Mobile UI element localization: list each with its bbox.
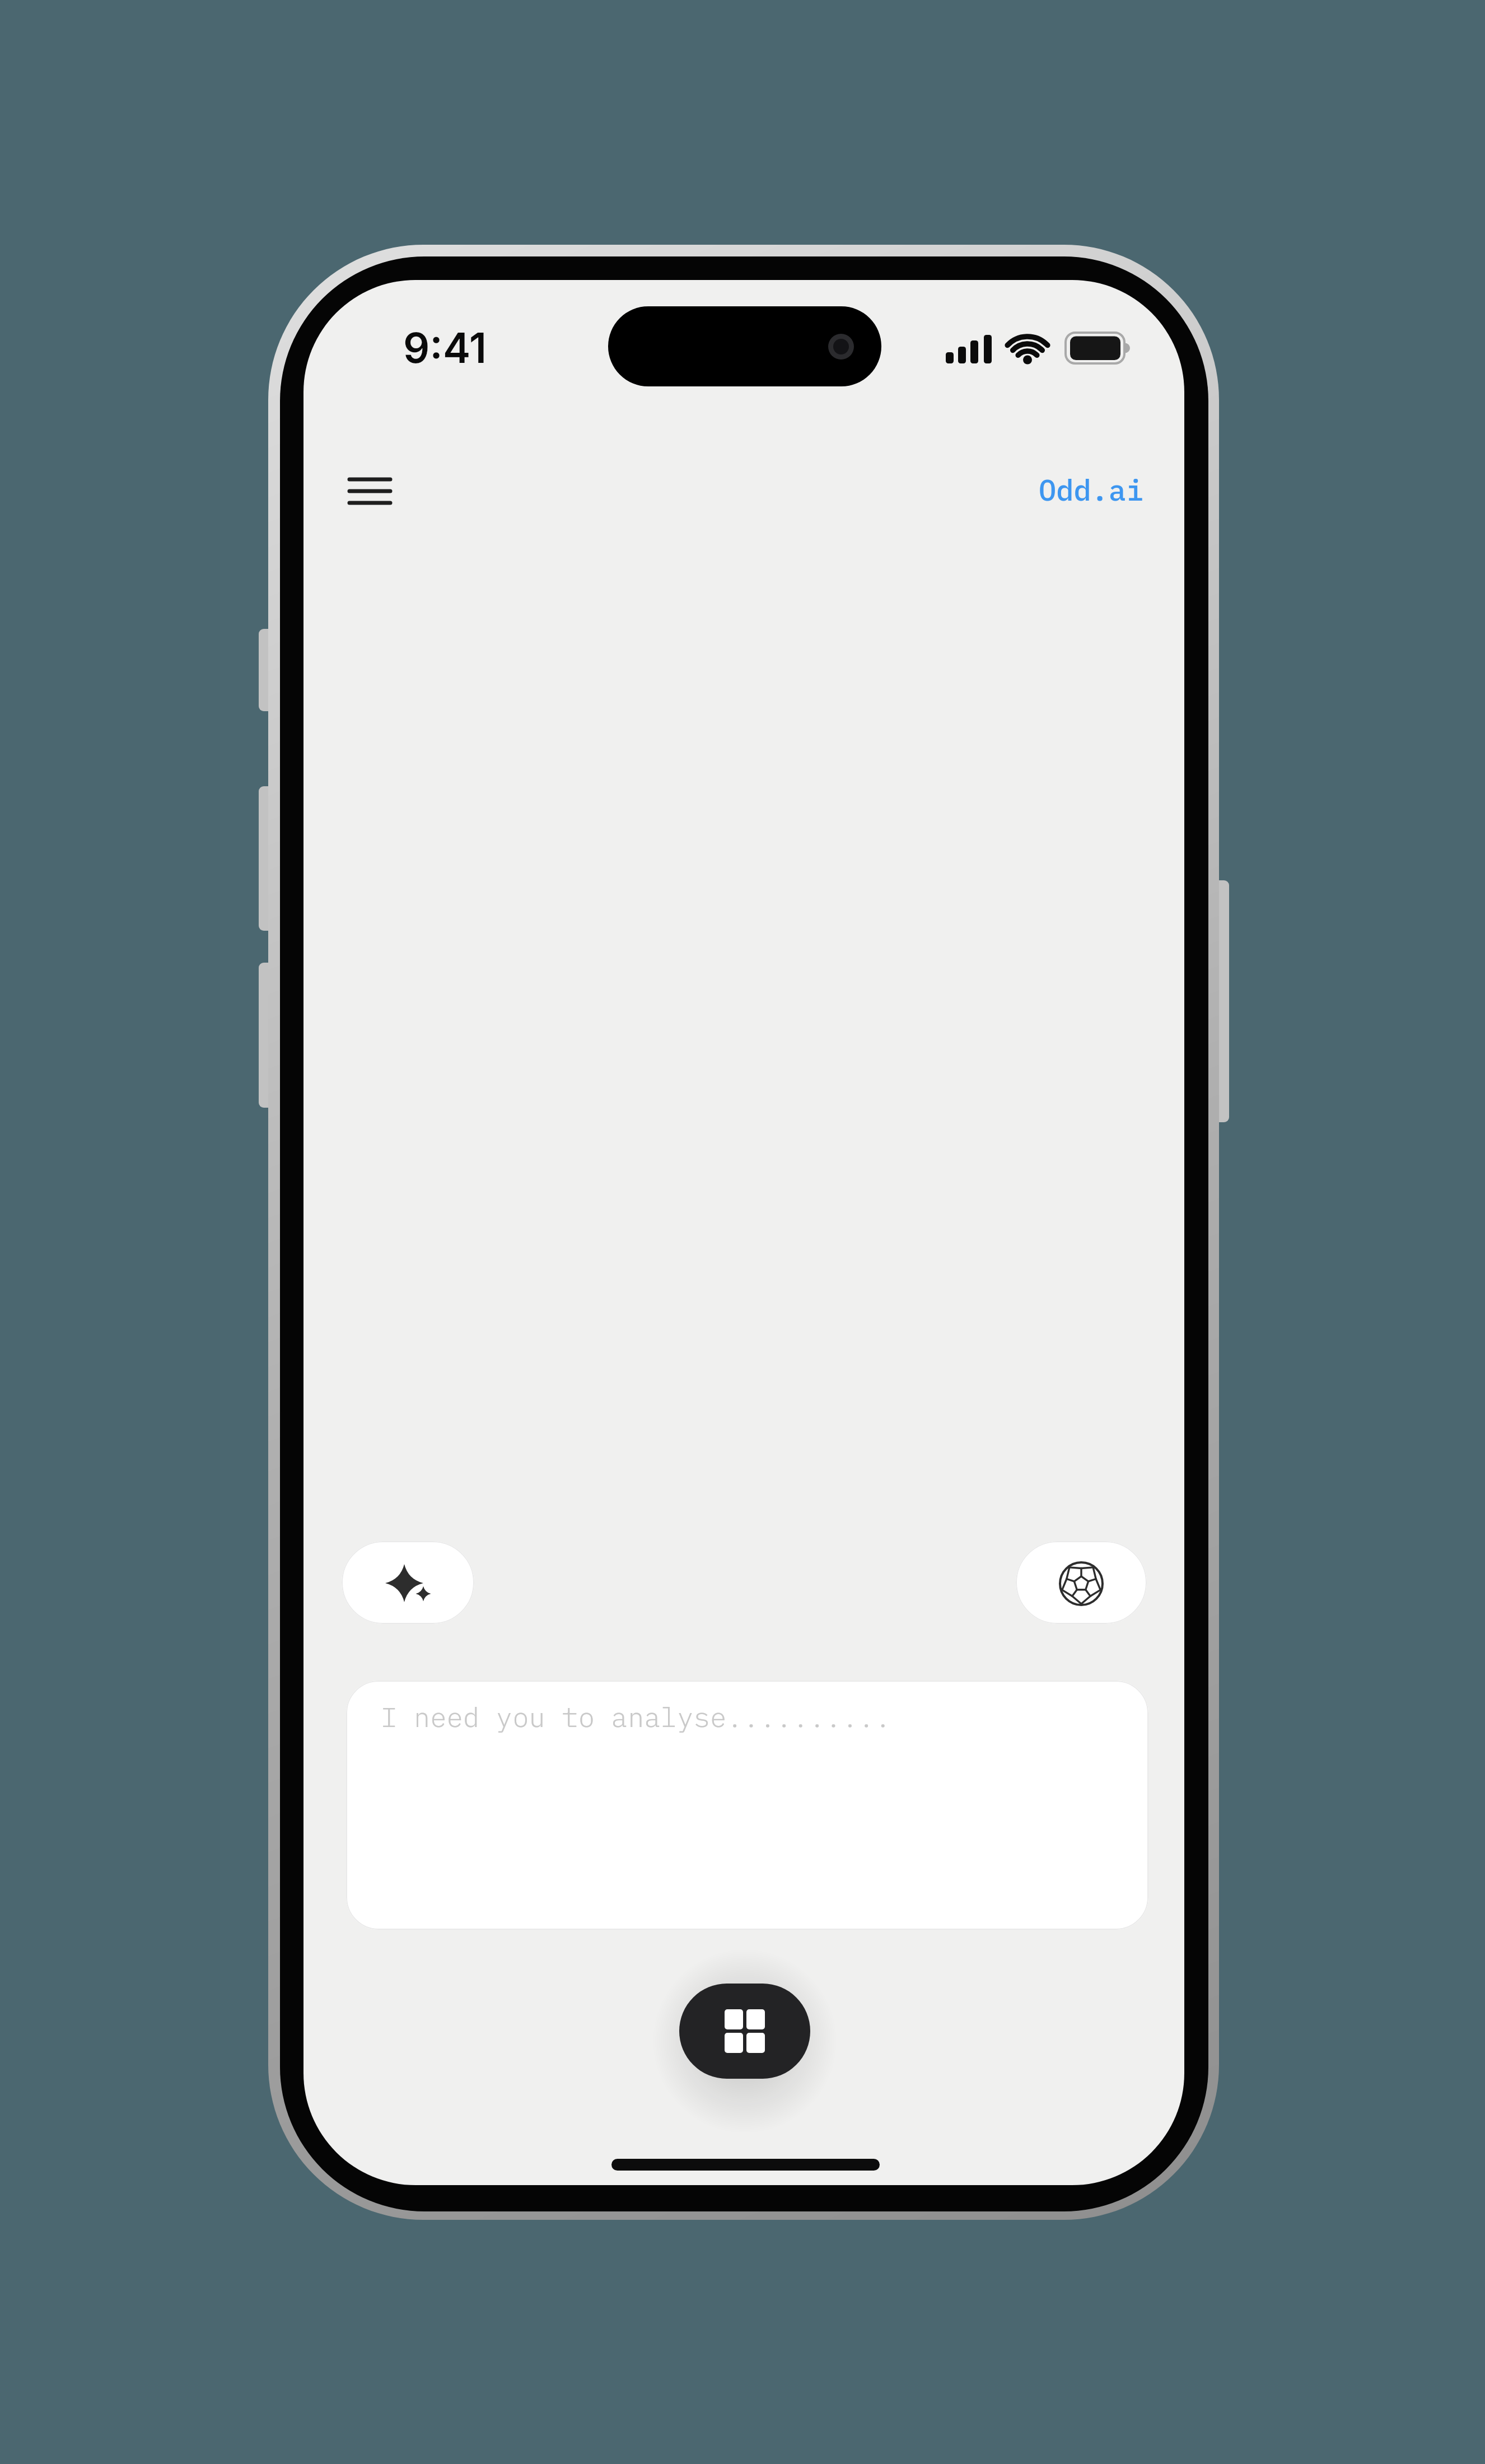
button[interactable] [679,1984,810,2079]
staticText: Odd.ai [1039,471,1144,509]
button[interactable] [343,467,398,515]
staticText: 9:41 [403,323,487,373]
button[interactable] [1016,1541,1147,1624]
button[interactable]: I need you to analyse.......... [346,1681,1148,1930]
button[interactable] [342,1541,474,1624]
staticText: I need you to analyse.......... [381,1699,891,1735]
